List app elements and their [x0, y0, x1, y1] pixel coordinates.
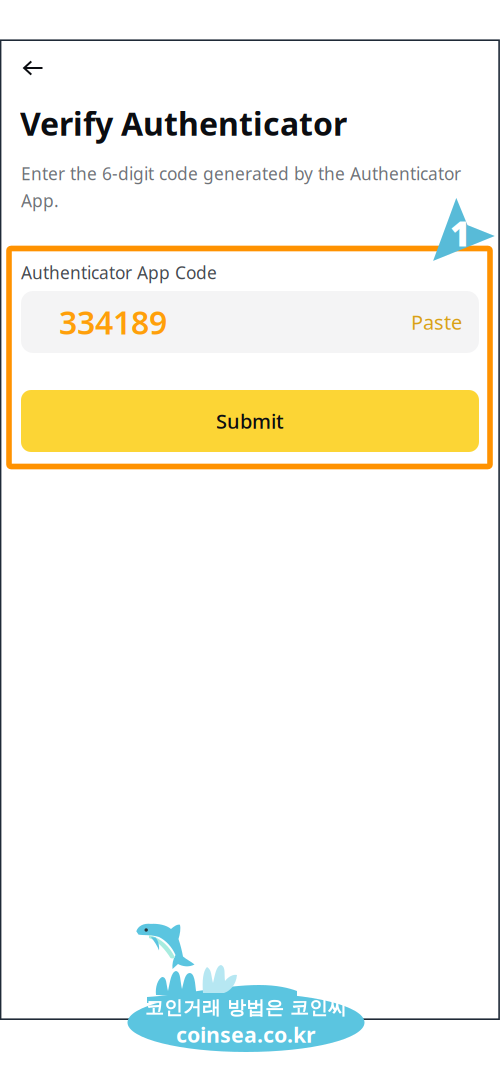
staticText: 334189 — [59, 301, 167, 343]
staticText: Enter the 6-digit code generated by the … — [21, 162, 461, 212]
button[interactable]: Paste — [405, 299, 468, 345]
button[interactable]: Submit — [21, 390, 479, 452]
staticText: 1 — [450, 210, 470, 256]
button[interactable]: Back — [11, 48, 55, 88]
staticText: coinsea.co.kr — [176, 1020, 316, 1049]
staticText: 코인거래 방법은 코인씨 — [145, 996, 347, 1019]
staticText: Submit — [216, 408, 284, 434]
staticText: Paste — [411, 309, 462, 335]
staticText: Authenticator App Code — [21, 261, 217, 284]
staticText: Verify Authenticator — [20, 102, 347, 144]
